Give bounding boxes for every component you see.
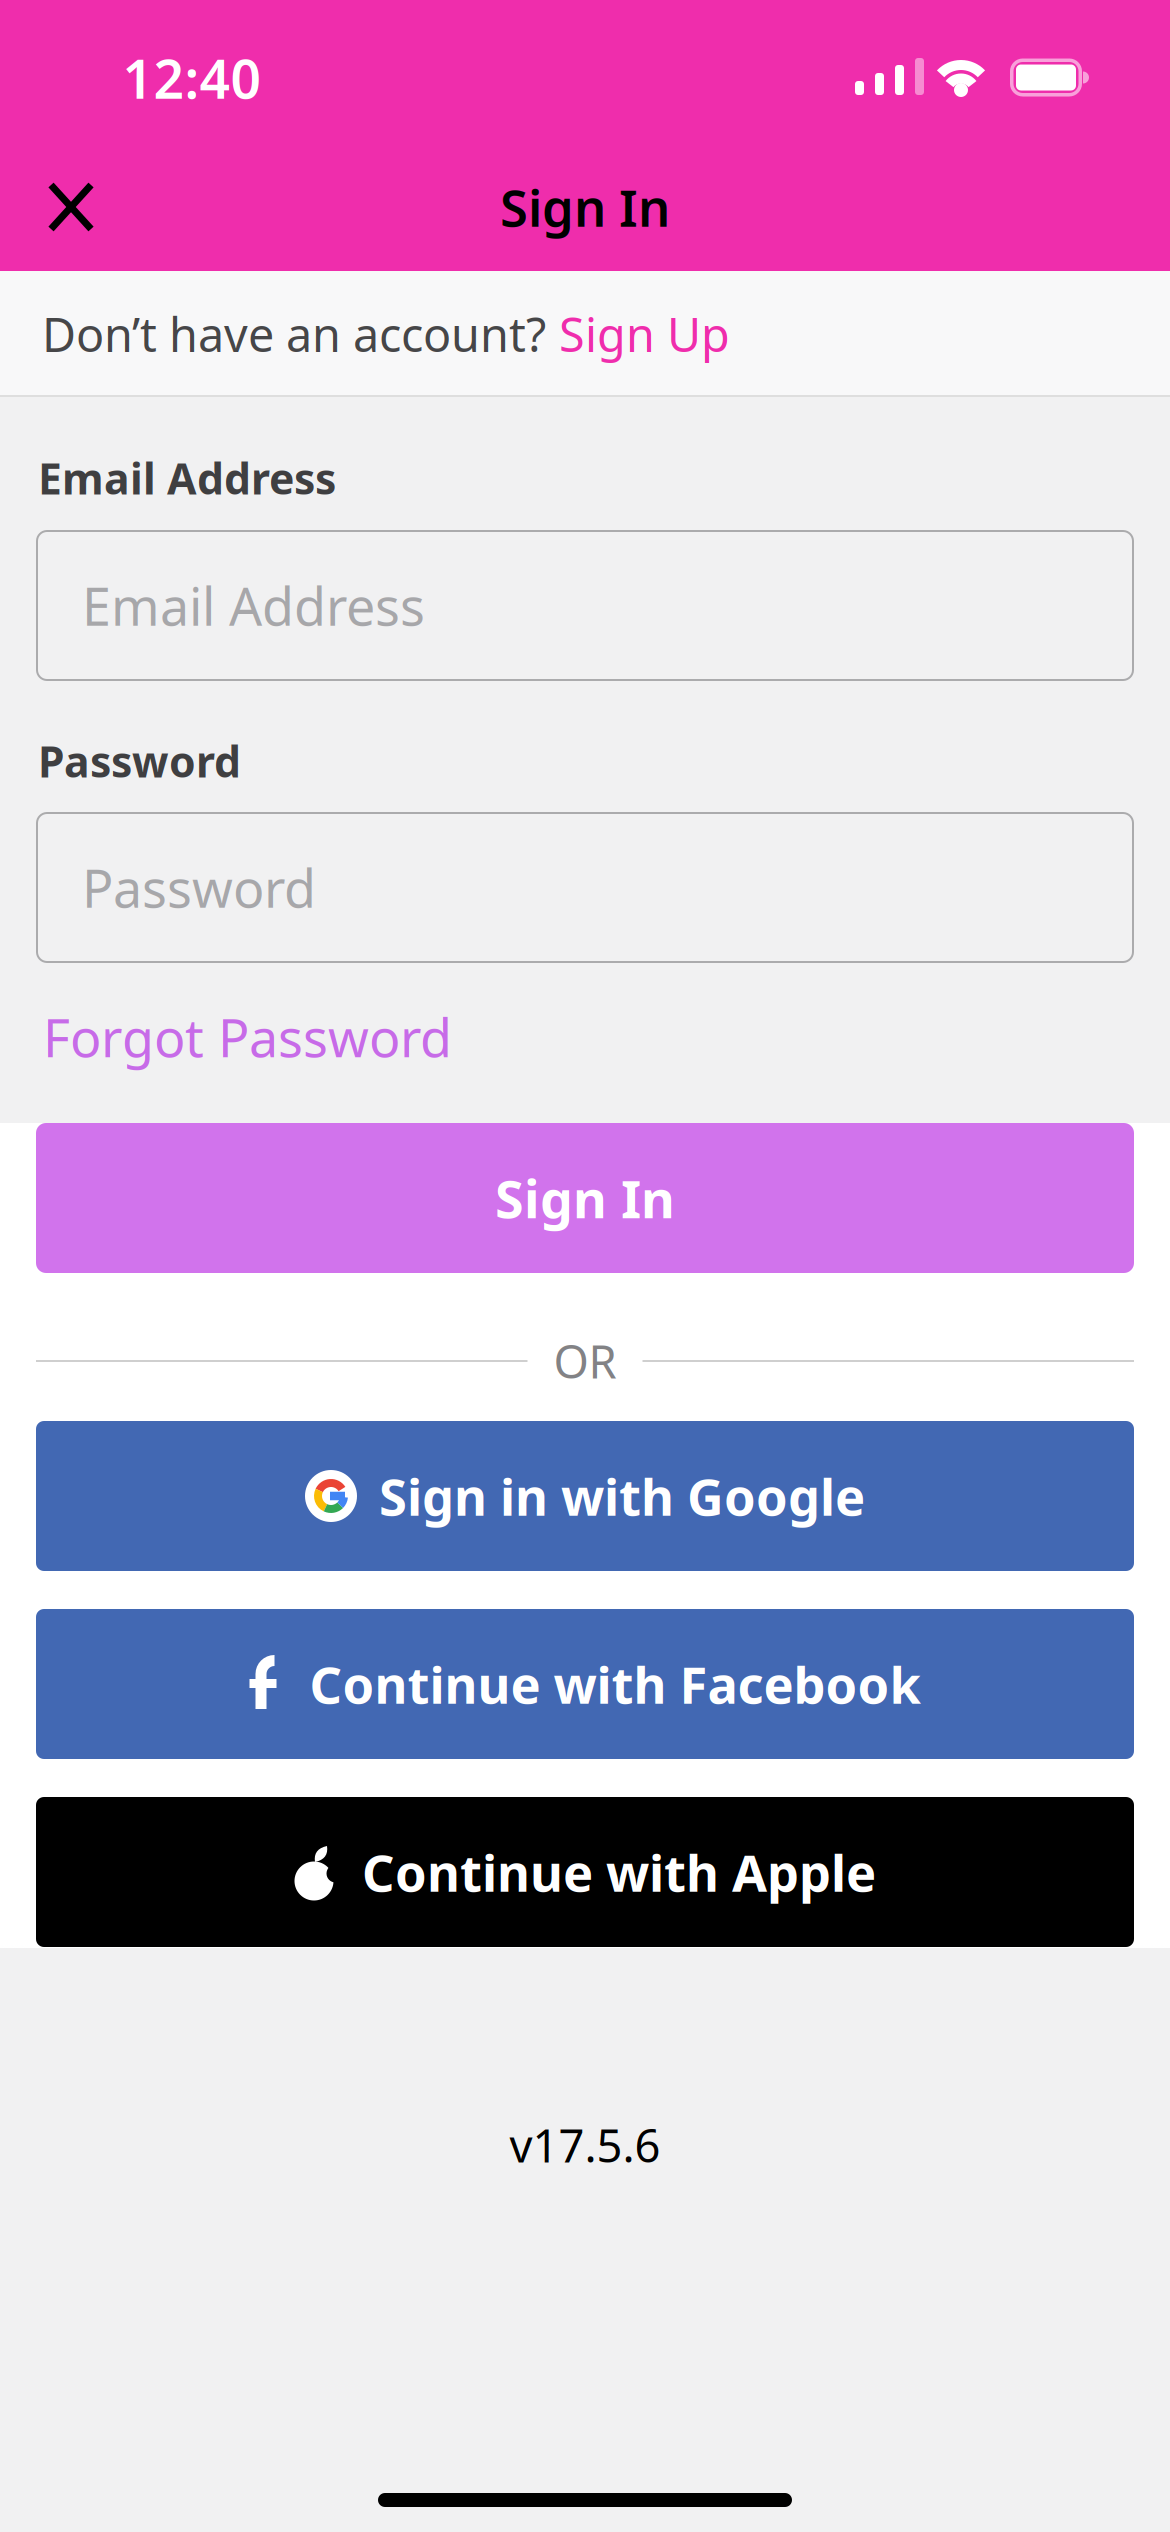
button[interactable]: Sign Up: [559, 303, 730, 365]
button[interactable]: Continue with Facebook: [36, 1609, 1134, 1759]
button[interactable]: Sign in with Google: [36, 1421, 1134, 1571]
staticText: Sign Up: [559, 303, 730, 365]
staticText: Sign In: [495, 1163, 675, 1233]
staticText: Sign In: [500, 173, 670, 241]
staticText: Password: [82, 853, 316, 922]
button[interactable]: Forgot Password: [43, 1002, 452, 1072]
staticText: Don’t have an account?: [42, 303, 546, 365]
staticText: Password: [38, 733, 241, 789]
button[interactable]: Sign In: [36, 1123, 1134, 1273]
staticText: 12:40: [122, 43, 261, 113]
staticText: OR: [553, 1331, 616, 1391]
button[interactable]: Close: [41, 177, 101, 237]
staticText: Email Address: [38, 450, 336, 506]
staticText: Email Address: [82, 571, 425, 640]
staticText: Continue with Apple: [362, 1838, 876, 1906]
button[interactable]: Email Address: [36, 530, 1134, 681]
staticText: Continue with Facebook: [309, 1650, 920, 1718]
button[interactable]: Password: [36, 812, 1134, 963]
button[interactable]: Continue with Apple: [36, 1797, 1134, 1947]
staticText: v17.5.6: [509, 2115, 660, 2175]
staticText: Forgot Password: [43, 1002, 452, 1072]
staticText: Sign in with Google: [379, 1462, 865, 1530]
